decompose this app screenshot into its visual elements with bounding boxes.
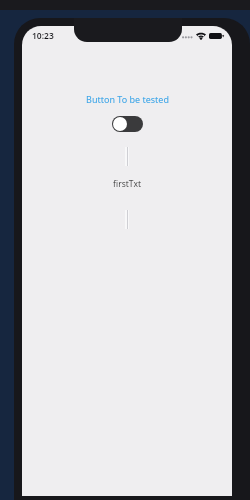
button[interactable]: Toggle switch [112, 116, 143, 132]
button[interactable]: Text field [125, 147, 129, 166]
button[interactable]: firstTxt [113, 178, 141, 190]
button[interactable]: Text field [125, 210, 129, 229]
staticText: Button To be tested [86, 93, 169, 105]
staticText: 10:23 [32, 30, 54, 42]
button[interactable]: Button To be tested [82, 91, 173, 107]
